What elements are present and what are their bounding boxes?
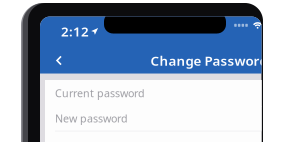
staticText: Change Password — [150, 52, 267, 69]
button[interactable]: Current password — [45, 80, 261, 106]
staticText: Current password — [55, 86, 145, 100]
button[interactable]: New password — [45, 106, 261, 130]
staticText: New password — [55, 111, 128, 125]
button[interactable]: Back — [46, 49, 72, 71]
staticText: 2:12 — [61, 22, 89, 40]
